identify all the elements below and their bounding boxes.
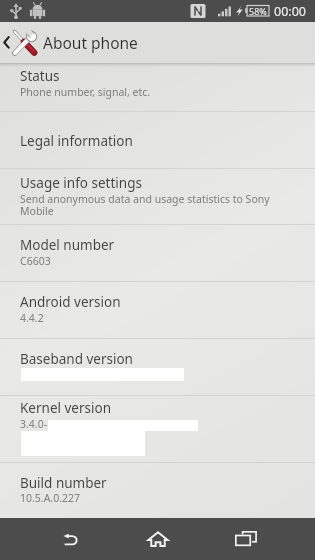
staticText: 4.4.2 <box>20 311 44 325</box>
button[interactable]: Recent apps <box>202 518 290 560</box>
staticText: About phone <box>43 32 138 53</box>
button[interactable]: Legal information <box>0 112 315 168</box>
staticText: Usage info settings <box>20 174 142 192</box>
button[interactable]: Navigate up: About phone <box>0 22 315 63</box>
staticText: 10.5.A.0.227 <box>20 491 81 505</box>
staticText: Build number <box>20 474 107 492</box>
staticText: 58% <box>249 5 267 17</box>
staticText: C6603 <box>20 254 51 268</box>
staticText: Kernel version <box>20 399 112 417</box>
staticText: Model number <box>20 236 115 254</box>
button[interactable]: Baseband version <box>0 339 315 395</box>
button[interactable]: Status <box>0 63 315 111</box>
button[interactable]: Build number <box>0 463 315 517</box>
staticText: Status <box>20 67 60 85</box>
staticText: Phone number, signal, etc. <box>20 85 151 99</box>
staticText: Send anonymous data and usage statistics… <box>20 192 270 206</box>
button[interactable]: Home <box>114 518 202 560</box>
staticText: Legal information <box>20 132 133 150</box>
staticText: Baseband version <box>20 350 133 368</box>
button[interactable]: Kernel version <box>0 396 315 462</box>
button[interactable]: Back <box>26 518 114 560</box>
staticText: Mobile <box>20 204 54 218</box>
button[interactable]: Android version <box>0 282 315 338</box>
staticText: 3.4.0- <box>20 417 48 431</box>
staticText: Android version <box>20 293 121 311</box>
button[interactable]: Usage info settings <box>0 169 315 224</box>
staticText: 00:00 <box>274 3 306 20</box>
button[interactable]: Model number <box>0 225 315 281</box>
